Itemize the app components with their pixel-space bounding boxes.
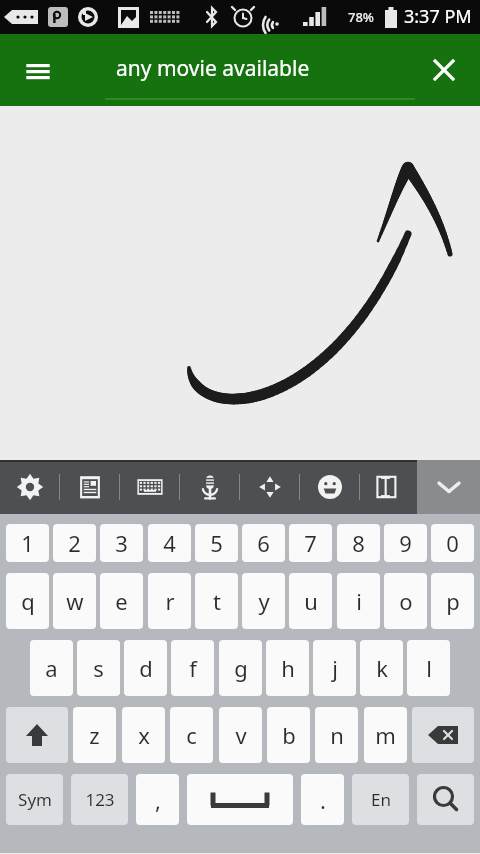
staticText: o [399,586,413,616]
button[interactable]: Backspace [412,707,474,763]
button[interactable]: t [195,573,238,629]
staticText: , [155,785,161,815]
staticText: . [320,785,326,815]
staticText: y [258,586,270,616]
staticText: En [371,788,391,811]
button[interactable]: Cursor control [240,460,299,514]
button[interactable]: 4 [148,524,191,562]
staticText: any movie available [116,54,310,83]
button[interactable]: 2 [53,524,96,562]
button[interactable]: j [313,640,356,696]
staticText: i [356,586,362,616]
button[interactable]: 6 [242,524,285,562]
staticText: n [330,720,344,750]
button[interactable]: c [170,707,213,763]
button[interactable]: o [384,573,427,629]
button[interactable]: z [73,707,116,763]
button[interactable]: y [242,573,285,629]
button[interactable]: Text edit [360,460,414,514]
staticText: u [304,586,318,616]
staticText: 8 [352,528,365,558]
button[interactable]: Settings [0,460,59,514]
staticText: r [165,586,175,616]
staticText: 4 [163,528,176,558]
staticText: Sym [18,788,52,811]
button[interactable]: 123 [71,774,128,825]
button[interactable]: Clipboard [60,460,119,514]
button[interactable]: 9 [384,524,427,562]
staticText: a [45,653,58,683]
button[interactable]: q [6,573,49,629]
staticText: 9 [399,528,412,558]
button[interactable]: v [219,707,262,763]
button[interactable]: Search [417,774,474,825]
staticText: s [93,653,104,683]
button[interactable]: f [171,640,214,696]
button[interactable]: k [360,640,403,696]
staticText: k [376,653,388,683]
staticText: 5 [210,528,223,558]
staticText: h [281,653,295,683]
button[interactable]: n [315,707,358,763]
button[interactable]: s [77,640,120,696]
button[interactable]: 8 [337,524,380,562]
staticText: c [186,720,197,750]
staticText: 3 [115,528,128,558]
button[interactable]: h [266,640,309,696]
button[interactable]: 0 [431,524,474,562]
button[interactable]: u [289,573,332,629]
button[interactable]: d [124,640,167,696]
button[interactable]: Menu [12,44,64,96]
staticText: 3:37 PM [404,4,472,29]
staticText: e [115,586,128,616]
button[interactable]: i [337,573,380,629]
button[interactable]: b [267,707,310,763]
staticText: z [89,720,100,750]
button[interactable]: g [219,640,262,696]
staticText: v [235,720,247,750]
staticText: g [234,653,248,683]
staticText: t [213,586,221,616]
button[interactable]: , [136,774,179,825]
button[interactable]: Emoji [300,460,359,514]
staticText: 6 [257,528,270,558]
button[interactable]: En [352,774,409,825]
button[interactable]: 1 [6,524,49,562]
button[interactable]: r [148,573,191,629]
button[interactable]: a [30,640,73,696]
staticText: 78% [348,8,374,26]
button[interactable]: 3 [100,524,143,562]
button[interactable]: 7 [289,524,332,562]
button[interactable]: Shift [6,707,68,763]
staticText: b [282,720,296,750]
button[interactable]: . [301,774,344,825]
staticText: p [446,586,460,616]
button[interactable]: Clear search [418,44,470,96]
button[interactable]: e [100,573,143,629]
staticText: j [332,653,338,683]
staticText: d [139,653,153,683]
button[interactable]: 5 [195,524,238,562]
button[interactable]: Space [187,774,293,825]
staticText: 7 [304,528,317,558]
staticText: m [375,720,396,750]
button[interactable]: Keyboard layout [120,460,179,514]
staticText: 0 [446,528,459,558]
button[interactable]: Sym [6,774,63,825]
staticText: 123 [85,788,115,811]
button[interactable]: Hide keyboard [417,460,480,514]
button[interactable]: l [407,640,450,696]
staticText: x [138,720,150,750]
staticText: f [189,653,197,683]
button[interactable]: m [364,707,407,763]
button[interactable]: w [53,573,96,629]
staticText: q [21,586,35,616]
staticText: 1 [21,528,34,558]
staticText: 2 [68,528,81,558]
staticText: l [426,653,432,683]
staticText: w [66,586,84,616]
button[interactable]: p [431,573,474,629]
button[interactable]: Voice input [180,460,239,514]
button[interactable]: x [122,707,165,763]
